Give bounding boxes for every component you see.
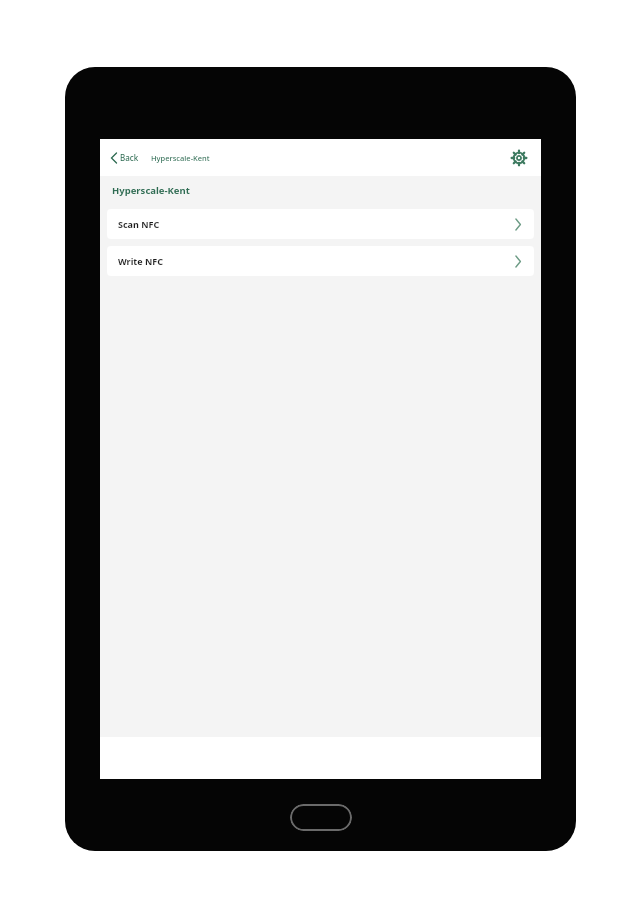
staticText: Write NFC — [118, 255, 163, 267]
button[interactable]: Settings — [506, 145, 532, 171]
button[interactable]: Home — [290, 804, 352, 831]
staticText: Hyperscale-Kent — [151, 153, 210, 163]
staticText: Hyperscale-Kent — [112, 184, 190, 197]
button[interactable]: Hyperscale-Kent — [148, 148, 213, 168]
button[interactable]: Scan NFC — [107, 209, 534, 239]
button[interactable]: Back — [105, 147, 145, 168]
staticText: Back — [120, 152, 139, 163]
button[interactable]: Write NFC — [107, 246, 534, 276]
staticText: Scan NFC — [118, 218, 160, 230]
